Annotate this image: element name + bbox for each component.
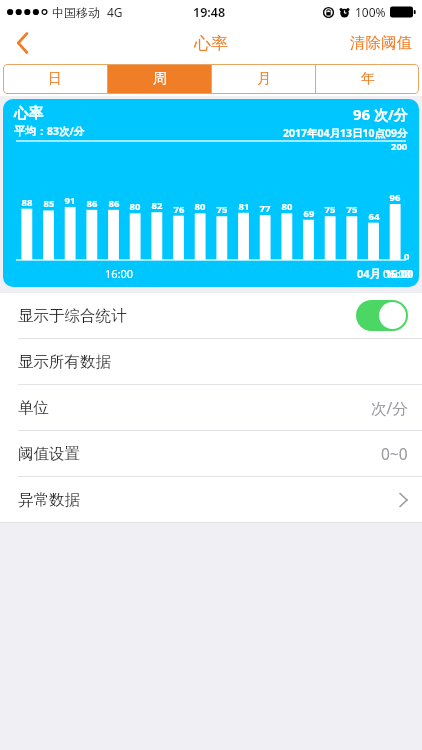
staticText: 80 (278, 200, 296, 213)
staticText: 16:00 (105, 266, 134, 281)
staticText: 平均： (14, 124, 47, 138)
staticText: 次/分 (371, 397, 408, 418)
staticText: 91 (61, 194, 79, 207)
staticText: 清除阈值 (350, 33, 412, 53)
staticText: 69 (300, 207, 318, 220)
button[interactable]: 阈值设置 (0, 431, 422, 476)
staticText: 100% (355, 4, 386, 20)
staticText: 75 (213, 203, 231, 216)
staticText: 80 (126, 200, 144, 213)
staticText: 85 (40, 197, 58, 210)
staticText: 中国移动 (52, 5, 100, 20)
staticText: 16:00 (385, 266, 414, 281)
staticText: 75 (321, 203, 339, 216)
button[interactable]: 日 (3, 64, 107, 94)
staticText: 异常数据 (18, 490, 80, 510)
staticText: 83次/分 (47, 124, 85, 138)
button[interactable]: 显示于综合统计开关 (356, 300, 408, 331)
button[interactable]: 显示所有数据 (0, 339, 422, 384)
staticText: 86 (105, 197, 123, 210)
staticText: 次/分 (374, 105, 408, 124)
staticText: 0~0 (381, 443, 408, 464)
staticText: 单位 (18, 398, 49, 418)
button[interactable]: 周 (108, 64, 211, 94)
button[interactable]: 清除阈值 (340, 24, 422, 62)
staticText: 75 (343, 203, 361, 216)
staticText: 80 (191, 200, 209, 213)
staticText: 月 (257, 70, 271, 88)
staticText: 76 (170, 203, 188, 216)
staticText: 2017年04月13日10点09分 (283, 126, 408, 140)
staticText: 77 (256, 202, 274, 215)
staticText: 显示于综合统计 (18, 306, 127, 326)
staticText: 心率 (14, 104, 43, 122)
button[interactable]: 单位 (0, 385, 422, 430)
staticText: 日 (48, 70, 62, 88)
staticText: 64 (365, 210, 383, 223)
staticText: 86 (83, 197, 101, 210)
staticText: 显示所有数据 (18, 352, 111, 372)
staticText: 06:00 (383, 266, 412, 281)
staticText: 阈值设置 (18, 444, 80, 464)
staticText: 年 (361, 70, 375, 88)
button[interactable]: 月 (212, 64, 315, 94)
staticText: 心率 (194, 33, 228, 54)
button[interactable]: 显示于综合统计 (0, 293, 422, 338)
button[interactable]: 异常数据 (0, 477, 422, 522)
staticText: 81 (235, 200, 253, 213)
staticText: 19:48 (193, 4, 226, 21)
staticText: 82 (148, 199, 166, 212)
staticText: 04月 (357, 266, 381, 281)
staticText: 4G (107, 4, 123, 20)
staticText: 周 (153, 70, 167, 88)
staticText: 200 (391, 140, 408, 153)
button[interactable]: 返回 (0, 24, 46, 62)
staticText: 88 (18, 196, 36, 209)
staticText: 96 (353, 104, 371, 124)
staticText: 96 (386, 191, 404, 204)
button[interactable]: 年 (316, 64, 419, 94)
staticText: 0 (404, 250, 410, 263)
